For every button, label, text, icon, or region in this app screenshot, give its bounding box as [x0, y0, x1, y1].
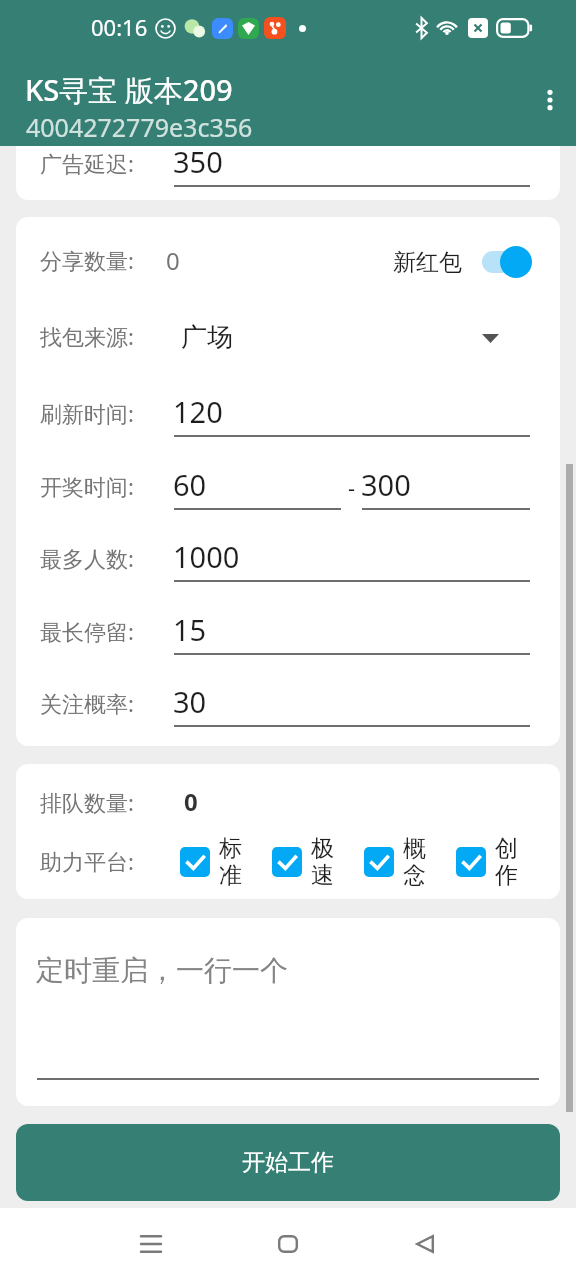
- staticText: KS寻宝 版本209: [25, 70, 233, 110]
- staticText: 300: [361, 465, 411, 504]
- staticText: 120: [173, 392, 223, 431]
- button[interactable]: New red packet toggle: [480, 244, 536, 280]
- button[interactable]: 新红包: [391, 234, 536, 290]
- staticText: -: [348, 472, 356, 502]
- staticText: 概念: [403, 834, 426, 890]
- button[interactable]: 极速: [272, 834, 334, 890]
- staticText: 广告延迟:: [40, 148, 134, 178]
- button[interactable]: 最长停留:: [40, 605, 536, 661]
- staticText: 助力平台:: [40, 846, 134, 876]
- staticText: 关注概率:: [40, 688, 134, 718]
- button[interactable]: 广告延迟:: [40, 146, 536, 192]
- staticText: 0: [184, 785, 198, 818]
- staticText: 广场: [181, 321, 233, 354]
- button[interactable]: Expand: [475, 310, 505, 366]
- button[interactable]: 关注概率:: [40, 677, 536, 733]
- button[interactable]: More options: [524, 74, 576, 126]
- staticText: 创作: [495, 834, 518, 890]
- staticText: 最多人数:: [40, 543, 134, 573]
- button[interactable]: 创作: [456, 834, 518, 890]
- staticText: 00:16: [91, 12, 148, 42]
- staticText: 15: [173, 610, 207, 649]
- staticText: 最长停留:: [40, 616, 134, 646]
- staticText: 30: [173, 682, 207, 721]
- staticText: 开奖时间:: [40, 471, 134, 501]
- button[interactable]: 助力平台:: [40, 835, 536, 891]
- button[interactable]: 开奖时间:: [40, 460, 536, 516]
- button[interactable]: Recent apps: [115, 1208, 187, 1280]
- staticText: 刷新时间:: [40, 398, 134, 428]
- button[interactable]: 刷新时间:: [40, 387, 536, 443]
- staticText: 新红包: [393, 248, 462, 277]
- button[interactable]: 概念: [364, 834, 426, 890]
- button[interactable]: 分享数量:: [40, 234, 536, 290]
- staticText: 60: [173, 465, 207, 504]
- button[interactable]: 排队数量:: [40, 776, 536, 832]
- staticText: 4004272779e3c356: [26, 110, 253, 144]
- staticText: 350: [173, 146, 223, 181]
- staticText: 极速: [311, 834, 334, 890]
- staticText: 定时重启，一行一个: [36, 953, 288, 988]
- button[interactable]: 开始工作: [16, 1124, 560, 1201]
- button[interactable]: 标准: [180, 834, 242, 890]
- staticText: 0: [166, 244, 180, 277]
- staticText: 开始工作: [242, 1148, 334, 1177]
- button[interactable]: 最多人数:: [40, 532, 536, 588]
- button[interactable]: Back: [389, 1208, 461, 1280]
- staticText: 找包来源:: [40, 321, 134, 351]
- staticText: 排队数量:: [40, 787, 134, 817]
- staticText: 分享数量:: [40, 245, 134, 275]
- button[interactable]: Home: [252, 1208, 324, 1280]
- staticText: 1000: [173, 537, 240, 576]
- button[interactable]: 找包来源:: [40, 310, 536, 366]
- staticText: 标准: [219, 834, 242, 890]
- button[interactable]: 定时重启，一行一个: [16, 918, 560, 1106]
